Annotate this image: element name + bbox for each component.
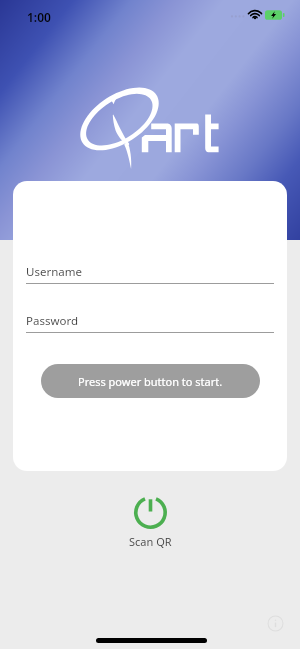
staticText: Username [26,264,82,280]
staticText: 1:00 [27,9,51,25]
staticText: Scan QR [129,534,172,549]
staticText: Password [26,313,79,329]
button[interactable]: Scan QR [0,496,300,549]
button[interactable]: Press power button to start. [41,364,260,398]
button[interactable]: Info [265,613,286,634]
staticText: Press power button to start. [78,374,223,389]
